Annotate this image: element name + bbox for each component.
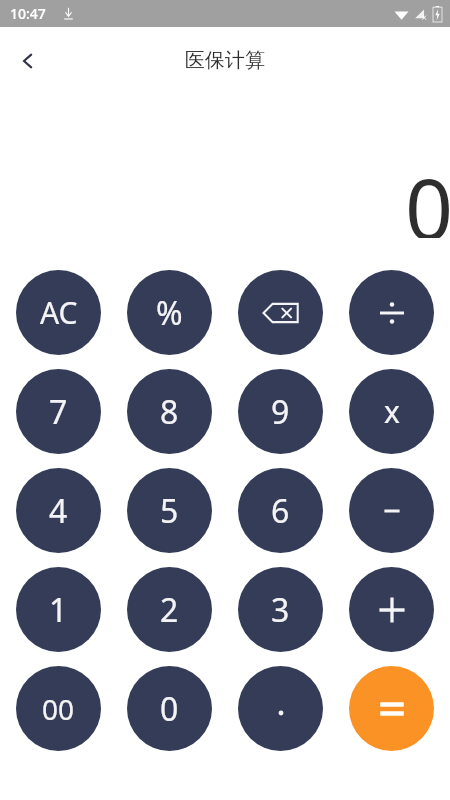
staticText: 0 bbox=[404, 150, 450, 238]
staticText: 9 bbox=[271, 390, 290, 434]
button[interactable]: 4 bbox=[16, 468, 101, 553]
button[interactable]: 3 bbox=[238, 567, 323, 652]
button[interactable]: Divide bbox=[349, 270, 434, 355]
button[interactable]: 7 bbox=[16, 369, 101, 454]
staticText: % bbox=[156, 291, 183, 335]
button[interactable]: 0 bbox=[127, 666, 212, 751]
staticText: 0 bbox=[160, 687, 179, 731]
button[interactable]: Decimal point bbox=[238, 666, 323, 751]
button[interactable]: % bbox=[127, 270, 212, 355]
staticText: 6 bbox=[271, 489, 290, 533]
button[interactable]: 9 bbox=[238, 369, 323, 454]
button[interactable]: Plus bbox=[349, 567, 434, 652]
staticText: 3 bbox=[271, 588, 290, 632]
staticText: 5 bbox=[160, 489, 179, 533]
staticText: 1 bbox=[49, 588, 68, 632]
staticText: 10:47 bbox=[10, 4, 46, 23]
button[interactable]: 00 bbox=[16, 666, 101, 751]
staticText: 医保计算 bbox=[185, 48, 265, 73]
staticText: 7 bbox=[49, 390, 68, 434]
button[interactable]: 2 bbox=[127, 567, 212, 652]
staticText: AC bbox=[40, 292, 78, 333]
button[interactable]: Back bbox=[6, 39, 50, 83]
staticText: 2 bbox=[160, 588, 179, 632]
button[interactable]: Minus bbox=[349, 468, 434, 553]
staticText: x bbox=[384, 391, 400, 432]
staticText: 4 bbox=[49, 489, 68, 533]
button[interactable]: 5 bbox=[127, 468, 212, 553]
button[interactable]: 1 bbox=[16, 567, 101, 652]
button[interactable]: AC bbox=[16, 270, 101, 355]
button[interactable]: 8 bbox=[127, 369, 212, 454]
button[interactable]: 6 bbox=[238, 468, 323, 553]
staticText: 8 bbox=[160, 390, 179, 434]
staticText: 00 bbox=[42, 690, 75, 728]
button[interactable]: Backspace bbox=[238, 270, 323, 355]
button[interactable]: x bbox=[349, 369, 434, 454]
button[interactable]: Equals bbox=[349, 666, 434, 751]
